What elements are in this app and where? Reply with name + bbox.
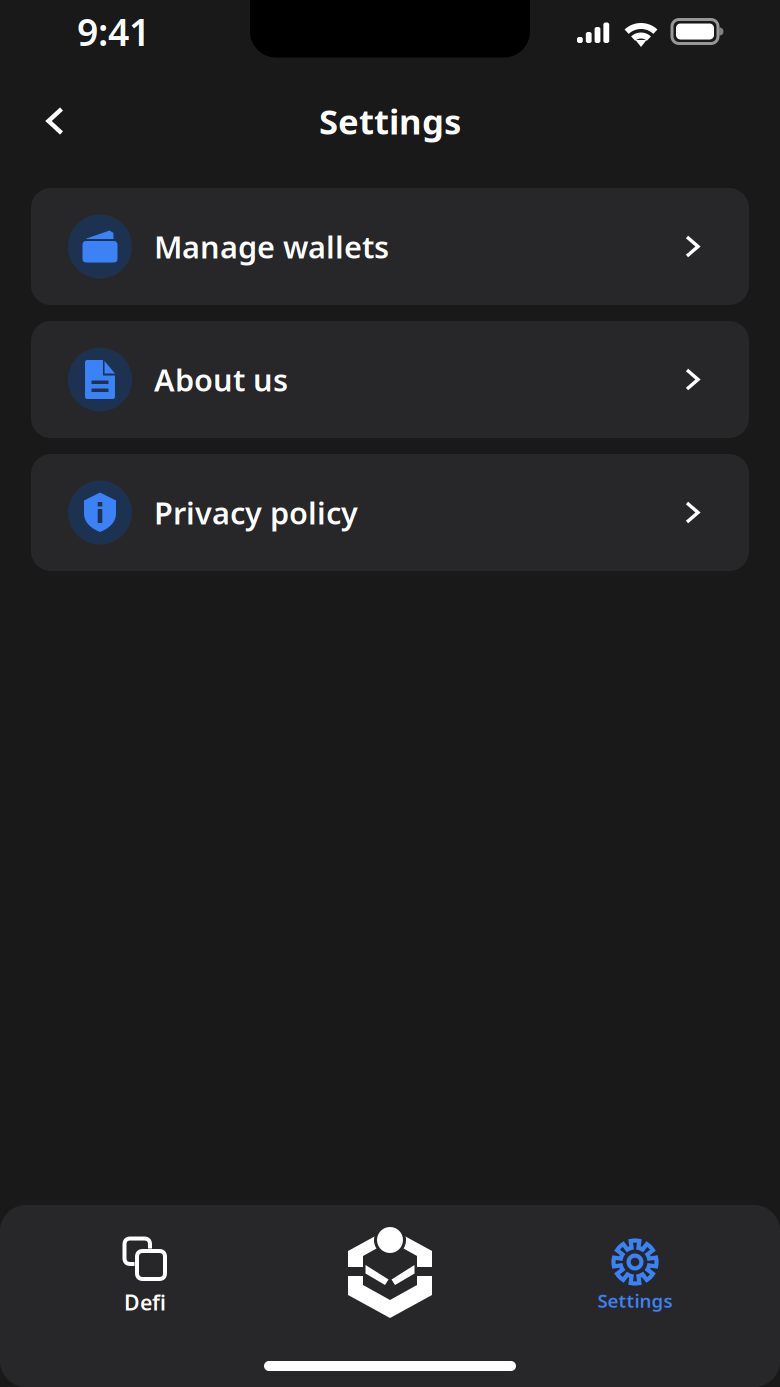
- staticText: 9:41: [77, 7, 150, 56]
- button[interactable]: About us: [31, 321, 749, 438]
- button[interactable]: Home: [347, 1227, 433, 1328]
- button[interactable]: Defi: [0, 1205, 220, 1316]
- button[interactable]: Manage wallets: [31, 188, 749, 305]
- button[interactable]: Back: [0, 94, 87, 148]
- staticText: Privacy policy: [154, 492, 358, 533]
- staticText: Manage wallets: [154, 226, 389, 267]
- staticText: About us: [154, 359, 288, 400]
- staticText: Settings: [319, 98, 461, 144]
- staticText: Settings: [597, 1288, 672, 1313]
- staticText: Defi: [124, 1288, 166, 1316]
- button[interactable]: Settings: [560, 1205, 780, 1313]
- button[interactable]: Privacy policy: [31, 454, 749, 571]
